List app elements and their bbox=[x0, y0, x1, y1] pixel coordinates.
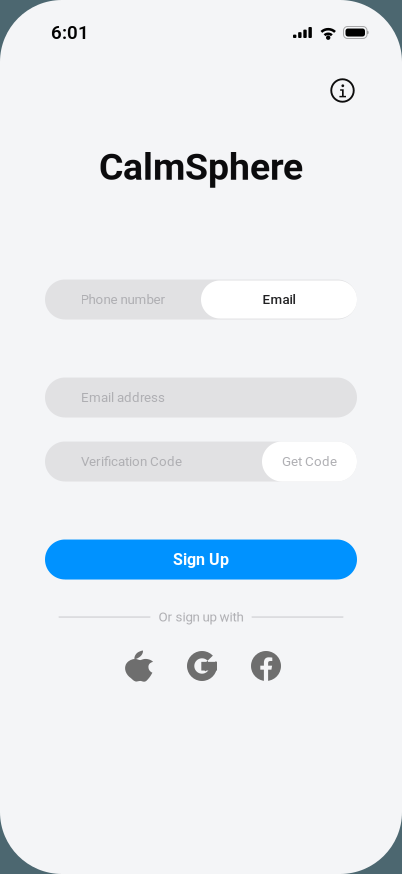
staticText: Email bbox=[262, 292, 295, 307]
button[interactable]: Get Code bbox=[262, 441, 357, 481]
button[interactable]: Sign up with Google bbox=[187, 651, 217, 681]
staticText: 6:01 bbox=[51, 22, 89, 43]
staticText: Email address bbox=[81, 390, 165, 405]
button[interactable]: Sign Up bbox=[45, 539, 357, 579]
button[interactable]: Phone number bbox=[45, 280, 201, 318]
button[interactable]: Sign up with Facebook bbox=[251, 651, 281, 681]
button[interactable]: Information bbox=[326, 74, 358, 106]
staticText: CalmSphere bbox=[99, 145, 303, 189]
button[interactable]: Sign up with Apple bbox=[125, 650, 153, 681]
staticText: Verification Code bbox=[81, 454, 182, 469]
staticText: Get Code bbox=[282, 454, 337, 469]
button[interactable]: Email bbox=[201, 280, 357, 318]
staticText: Sign Up bbox=[173, 550, 229, 569]
staticText: Or sign up with bbox=[158, 609, 243, 625]
staticText: Phone number bbox=[80, 292, 165, 307]
